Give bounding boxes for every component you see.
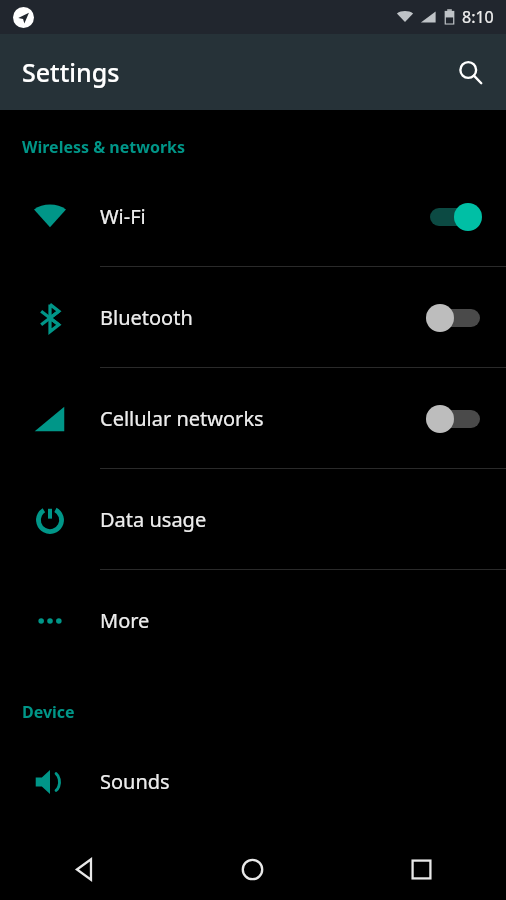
button[interactable]: Home <box>168 838 337 900</box>
staticText: Bluetooth <box>100 304 426 331</box>
staticText: Data usage <box>100 506 506 533</box>
button[interactable]: Bluetooth <box>0 267 506 368</box>
button[interactable]: Back <box>0 838 168 900</box>
staticText: 8:10 <box>462 6 494 28</box>
button[interactable]: Sounds <box>0 731 506 832</box>
button[interactable]: Cellular networks <box>0 368 506 469</box>
staticText: Wireless & networks <box>22 136 186 158</box>
button[interactable]: Data usage <box>0 469 506 570</box>
button[interactable]: Recent apps <box>337 838 506 900</box>
staticText: Cellular networks <box>100 405 426 432</box>
staticText: More <box>100 607 506 634</box>
staticText: Settings <box>22 55 120 89</box>
staticText: Device <box>22 701 75 723</box>
staticText: Wi-Fi <box>100 203 426 230</box>
button[interactable]: Wi-Fi <box>0 166 506 267</box>
button[interactable]: Search <box>446 48 494 96</box>
button[interactable]: More <box>0 570 506 671</box>
staticText: Sounds <box>100 768 506 795</box>
